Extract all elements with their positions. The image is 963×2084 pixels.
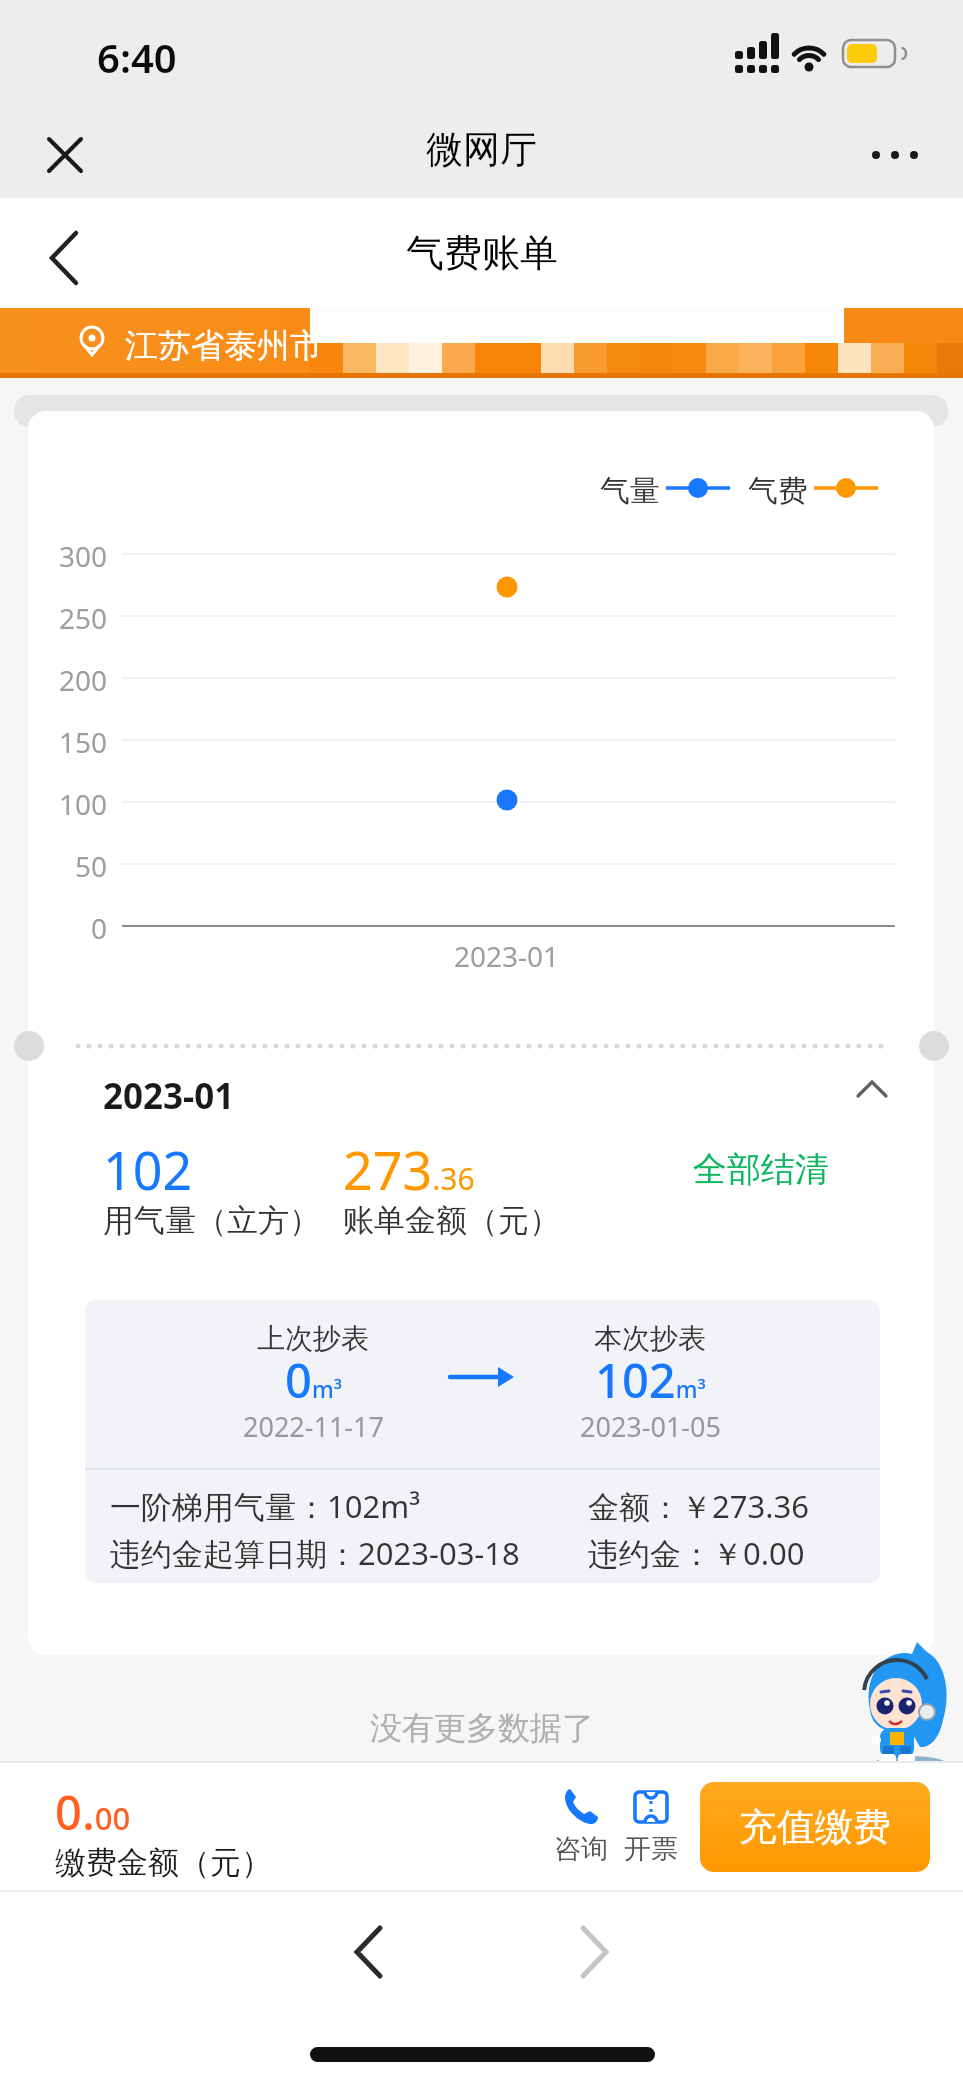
staticText: 50: [75, 847, 108, 881]
button[interactable]: 开票: [618, 1780, 684, 1872]
button[interactable]: 充值缴费: [700, 1782, 930, 1872]
staticText: 2022-11-17: [243, 1408, 384, 1444]
staticText: 6:40: [97, 30, 177, 84]
staticText: 充值缴费: [739, 1803, 891, 1851]
staticText: 金额：￥273.36: [588, 1485, 809, 1527]
staticText: 上次抄表: [257, 1321, 369, 1356]
staticText: 全部结清: [693, 1148, 829, 1191]
button[interactable]: 咨询: [548, 1780, 614, 1872]
button[interactable]: [553, 1910, 643, 1994]
staticText: 2023-01: [454, 937, 560, 973]
staticText: 用气量（立方）: [103, 1201, 320, 1240]
button[interactable]: [860, 128, 930, 182]
staticText: 气量: [600, 472, 660, 510]
staticText: 2023-01: [103, 1072, 235, 1120]
staticText: 2023-01-05: [580, 1408, 721, 1444]
staticText: 250: [59, 599, 108, 633]
staticText: 300: [59, 537, 108, 571]
staticText: 江苏省泰州市: [125, 325, 323, 367]
staticText: 100: [59, 785, 108, 819]
staticText: 0m³: [285, 1348, 342, 1408]
staticText: 咨询: [554, 1832, 608, 1866]
staticText: 一阶梯用气量：102m³: [110, 1485, 421, 1527]
staticText: 缴费金额（元）: [55, 1843, 272, 1882]
staticText: 微网厅: [426, 126, 537, 173]
staticText: 0: [91, 909, 108, 943]
staticText: 违约金：￥0.00: [588, 1532, 805, 1574]
staticText: 开票: [624, 1832, 678, 1866]
staticText: 账单金额（元）: [343, 1201, 560, 1240]
button[interactable]: 江苏省泰州市: [0, 308, 963, 378]
staticText: 没有更多数据了: [370, 1708, 594, 1748]
staticText: 本次抄表: [594, 1321, 706, 1356]
staticText: 150: [59, 723, 108, 757]
staticText: 气费: [748, 472, 808, 510]
staticText: 违约金起算日期：2023-03-18: [110, 1532, 520, 1574]
button[interactable]: [320, 1910, 410, 1994]
button[interactable]: [38, 128, 92, 182]
staticText: 273.36: [343, 1134, 475, 1205]
staticText: 200: [59, 661, 108, 695]
button[interactable]: [34, 228, 94, 288]
staticText: 102m³: [595, 1348, 706, 1408]
button[interactable]: [846, 1066, 898, 1114]
staticText: 0.00: [55, 1780, 131, 1844]
staticText: 气费账单: [406, 229, 558, 277]
staticText: 102: [103, 1134, 193, 1205]
